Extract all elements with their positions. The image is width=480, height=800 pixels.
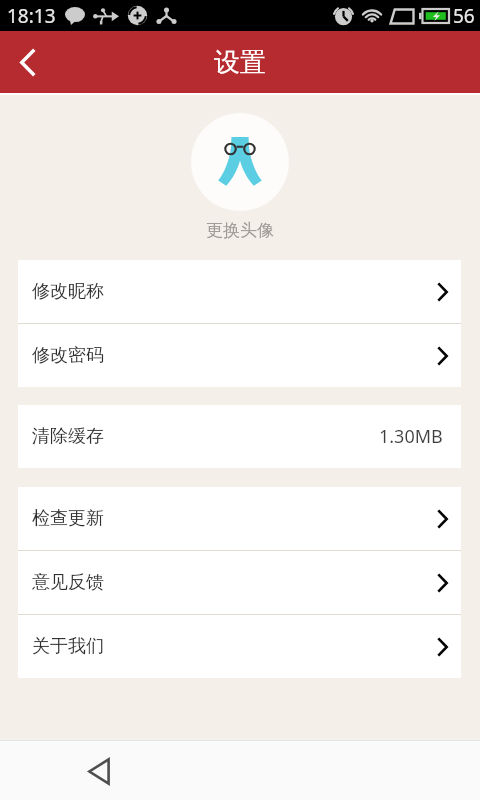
staticText: 关于我们 (32, 635, 104, 658)
button[interactable]: Back (0, 35, 55, 90)
button[interactable]: 修改昵称 (18, 260, 461, 323)
button[interactable]: Change avatar (191, 113, 289, 241)
staticText: 检查更新 (32, 507, 104, 530)
staticText: 1.30MB (379, 424, 443, 449)
button[interactable]: 清除缓存 (18, 405, 461, 468)
staticText: 设置 (214, 46, 266, 79)
staticText: 修改昵称 (32, 280, 104, 303)
button[interactable]: 关于我们 (18, 615, 461, 678)
staticText: 18:13 (7, 3, 56, 29)
staticText: 清除缓存 (32, 425, 104, 448)
staticText: 56 (453, 3, 475, 29)
button[interactable]: Back (76, 748, 122, 794)
staticText: 修改密码 (32, 344, 104, 367)
button[interactable]: 修改密码 (18, 324, 461, 387)
button[interactable]: 检查更新 (18, 487, 461, 550)
staticText: 意见反馈 (32, 571, 104, 594)
staticText: 更换头像 (206, 220, 274, 241)
button[interactable]: 意见反馈 (18, 551, 461, 614)
